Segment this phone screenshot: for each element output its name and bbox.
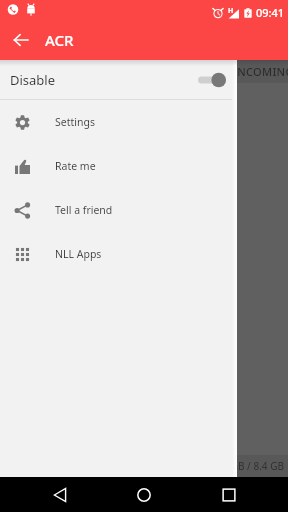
staticText: Tell a friend — [55, 203, 113, 217]
button[interactable]: Settings — [0, 100, 237, 144]
staticText: ACR — [45, 30, 74, 50]
staticText: Settings — [55, 115, 95, 129]
staticText: 5.9 GB / 8.4 GB — [214, 459, 284, 473]
staticText: INCOMING — [233, 64, 288, 79]
button[interactable]: Disable — [0, 60, 237, 99]
button[interactable]: Rate me — [0, 144, 237, 188]
staticText: Disable — [10, 71, 56, 89]
staticText: Rate me — [55, 159, 96, 173]
staticText: H — [228, 6, 234, 16]
staticText: NLL Apps — [55, 247, 102, 261]
button[interactable]: NLL Apps — [0, 232, 237, 276]
button[interactable]: Navigate up — [0, 23, 41, 56]
button[interactable]: Recent apps — [186, 477, 271, 512]
button[interactable]: Tell a friend — [0, 188, 237, 232]
staticText: 09:41 — [256, 5, 285, 20]
button[interactable]: Home — [102, 477, 186, 512]
button[interactable]: Back — [18, 477, 102, 512]
